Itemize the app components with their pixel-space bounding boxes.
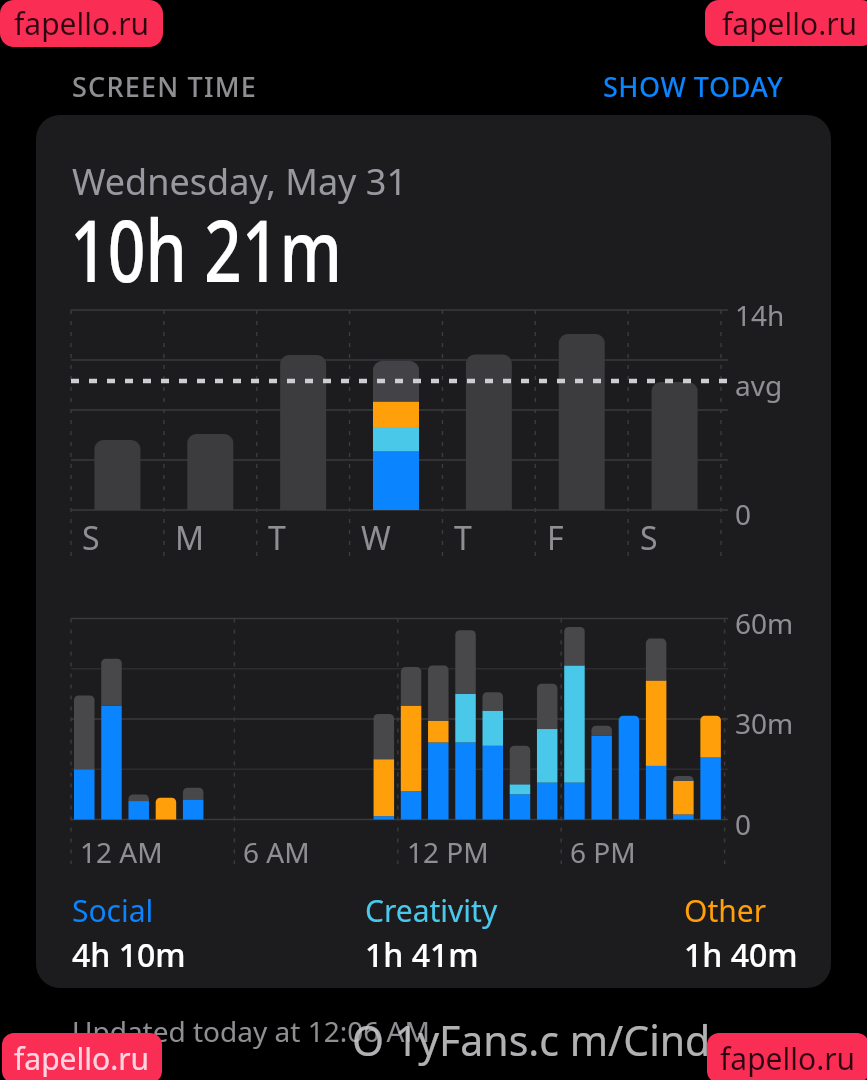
staticText: 14h — [735, 296, 785, 334]
staticText: Wednesday, May 31 — [72, 157, 408, 206]
staticText: 12 AM — [80, 833, 163, 871]
staticText: 12 PM — [407, 833, 489, 871]
button[interactable]: SHOW TODAY — [603, 68, 784, 105]
staticText: fapello.ru — [14, 1038, 150, 1079]
staticText: SHOW TODAY — [603, 68, 784, 105]
button[interactable]: fapello.ru — [2, 1033, 162, 1080]
staticText: Updated today at 12:06 AM — [72, 1012, 430, 1050]
staticText: 1h 41m — [365, 933, 479, 977]
staticText: F — [547, 516, 564, 560]
staticText: 60m — [735, 604, 794, 642]
staticText: fapello.ru — [720, 1038, 856, 1079]
staticText: Other — [684, 890, 767, 931]
staticText: SCREEN TIME — [72, 68, 257, 105]
staticText: 0 — [735, 495, 752, 533]
staticText: 6 AM — [243, 833, 310, 871]
staticText: fapello.ru — [722, 3, 858, 44]
button[interactable]: fapello.ru — [705, 0, 867, 46]
button[interactable]: fapello.ru — [707, 1033, 867, 1080]
staticText: T — [268, 516, 286, 560]
staticText: Creativity — [365, 890, 498, 931]
staticText: S — [640, 516, 658, 560]
staticText: 30m — [735, 704, 794, 742]
staticText: 1h 40m — [684, 933, 798, 977]
staticText: 10h 21m — [70, 190, 343, 307]
staticText: W — [361, 516, 391, 560]
staticText: Social — [72, 890, 154, 931]
staticText: fapello.ru — [14, 3, 150, 44]
staticText: T — [454, 516, 472, 560]
button[interactable]: fapello.ru — [0, 0, 163, 47]
staticText: S — [82, 516, 100, 560]
staticText: O 1yFans.c m/Cind — [352, 1012, 711, 1068]
staticText: 4h 10m — [72, 933, 186, 977]
staticText: 0 — [735, 805, 752, 843]
staticText: avg — [735, 366, 783, 404]
staticText: 6 PM — [570, 833, 636, 871]
staticText: M — [175, 516, 205, 560]
